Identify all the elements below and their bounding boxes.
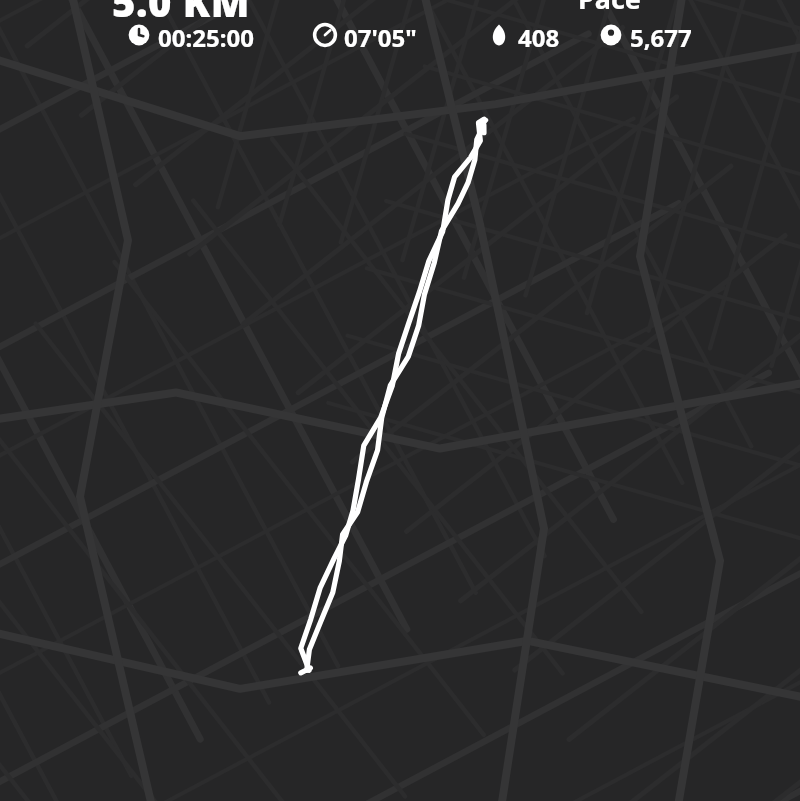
button[interactable]: 408 calories xyxy=(486,22,646,56)
button[interactable]: Average pace label xyxy=(578,0,641,17)
staticText: Pace xyxy=(578,0,641,17)
staticText: 5,677 xyxy=(630,21,692,54)
button[interactable]: Duration 25 minutes xyxy=(126,22,286,56)
staticText: 00:25:00 xyxy=(158,21,254,54)
staticText: 408 xyxy=(518,21,560,54)
button[interactable]: 5677 steps xyxy=(598,22,758,56)
button[interactable]: Distance 5.0 KM xyxy=(112,0,250,28)
button[interactable]: Average pace 7 minutes 5 seconds xyxy=(312,22,472,56)
staticText: 5.0 KM xyxy=(112,0,250,28)
staticText: 07'05" xyxy=(344,21,417,54)
